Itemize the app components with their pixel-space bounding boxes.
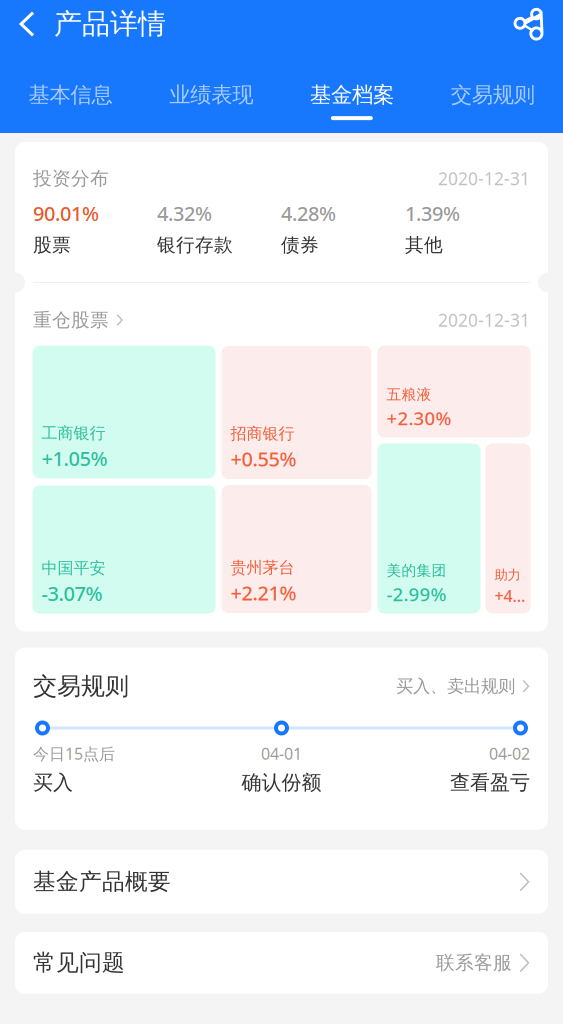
staticText: 90.01%: [33, 200, 99, 227]
staticText: 银行存款: [157, 234, 233, 256]
button[interactable]: 常见问题: [15, 932, 548, 994]
staticText: 产品详情: [54, 7, 166, 41]
staticText: 中国平安: [41, 558, 105, 578]
button[interactable]: Share: [501, 0, 563, 48]
staticText: 交易规则: [451, 82, 535, 108]
staticText: +2.30%: [386, 406, 451, 430]
staticText: -2.99%: [386, 582, 446, 606]
staticText: 确认份额: [241, 770, 321, 795]
button[interactable]: 买入、卖出规则: [396, 676, 530, 697]
staticText: 基金产品概要: [33, 868, 171, 896]
staticText: 04-01: [261, 743, 302, 764]
staticText: 04-02: [489, 743, 530, 764]
staticText: 2020-12-31: [438, 308, 530, 331]
staticText: +2.21%: [230, 579, 296, 606]
button[interactable]: 基金产品概要: [15, 850, 548, 914]
staticText: 助力: [494, 567, 520, 583]
staticText: 交易规则: [33, 671, 129, 701]
staticText: -3.07%: [41, 580, 102, 607]
staticText: 买入、卖出规则: [396, 676, 515, 697]
staticText: 4.32%: [157, 200, 212, 227]
staticText: 美的集团: [386, 562, 446, 580]
staticText: +4.37%: [494, 585, 527, 606]
staticText: 买入: [33, 770, 73, 795]
staticText: 联系客服: [436, 951, 512, 974]
staticText: 1.39%: [405, 200, 460, 227]
staticText: 业绩表现: [169, 82, 253, 108]
button[interactable]: 基金档案: [281, 48, 422, 133]
staticText: 五粮液: [386, 386, 431, 404]
staticText: 今日15点后: [33, 743, 115, 764]
staticText: 基金档案: [310, 82, 394, 108]
staticText: 4.28%: [281, 200, 336, 227]
staticText: 2020-12-31: [438, 167, 530, 190]
staticText: 工商银行: [41, 423, 105, 443]
staticText: 贵州茅台: [230, 558, 294, 577]
staticText: 招商银行: [230, 424, 294, 443]
button[interactable]: 基本信息: [0, 48, 141, 133]
staticText: 债券: [281, 234, 319, 256]
staticText: 基本信息: [28, 82, 112, 108]
staticText: 常见问题: [33, 949, 125, 977]
staticText: 重仓股票: [33, 309, 109, 331]
staticText: +1.05%: [41, 445, 107, 472]
staticText: +0.55%: [230, 445, 296, 472]
staticText: 查看盈亏: [450, 770, 530, 795]
button[interactable]: 交易规则: [422, 48, 563, 133]
button[interactable]: 业绩表现: [141, 48, 282, 133]
staticText: 股票: [33, 234, 71, 256]
staticText: 投资分布: [33, 167, 109, 190]
staticText: 其他: [405, 234, 443, 256]
button[interactable]: Back: [0, 0, 54, 48]
